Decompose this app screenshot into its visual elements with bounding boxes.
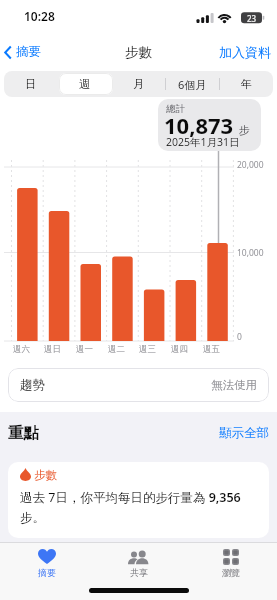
- staticText: 年: [241, 77, 252, 91]
- staticText: 10,000: [237, 247, 264, 259]
- staticText: 0: [237, 331, 242, 343]
- staticText: 10:28: [24, 8, 55, 24]
- button[interactable]: 瀏覽: [185, 543, 277, 578]
- staticText: 週二: [108, 344, 125, 355]
- staticText: 無法使用: [211, 378, 257, 392]
- staticText: 週五: [203, 344, 220, 355]
- staticText: 20,000: [237, 159, 264, 171]
- staticText: 10,873: [164, 110, 234, 140]
- button[interactable]: 摘要: [4, 44, 41, 60]
- staticText: 摘要: [38, 567, 56, 578]
- button[interactable]: 趨勢: [8, 368, 269, 402]
- staticText: 週四: [171, 344, 188, 355]
- button[interactable]: 加入資料: [219, 44, 271, 60]
- staticText: 月: [133, 77, 144, 91]
- staticText: 瀏覽: [222, 567, 240, 578]
- staticText: 週: [79, 77, 90, 91]
- staticText: 週六: [13, 344, 30, 355]
- staticText: 過去 7日，你平均每日的步行量為 9,356: [20, 489, 241, 506]
- staticText: 步。: [20, 510, 45, 526]
- staticText: 步數: [34, 468, 57, 482]
- button[interactable]: 步數: [8, 462, 269, 538]
- staticText: 共享: [130, 567, 148, 578]
- staticText: 趨勢: [20, 377, 211, 393]
- button[interactable]: 週: [57, 71, 111, 97]
- button[interactable]: 摘要: [0, 543, 93, 578]
- staticText: 週日: [44, 344, 61, 355]
- button[interactable]: 顯示全部: [219, 425, 269, 441]
- staticText: 步: [239, 123, 250, 137]
- button[interactable]: 日: [4, 71, 57, 97]
- staticText: 日: [25, 77, 36, 91]
- staticText: 重點: [8, 423, 39, 443]
- staticText: 6個月: [178, 77, 207, 92]
- button[interactable]: 年: [219, 71, 273, 97]
- staticText: 步數: [125, 44, 152, 61]
- staticText: 23: [247, 13, 257, 24]
- button[interactable]: 6個月: [165, 71, 219, 97]
- staticText: 週三: [139, 344, 156, 355]
- button[interactable]: 月: [111, 71, 165, 97]
- staticText: 摘要: [16, 44, 41, 60]
- staticText: 2025年1月31日: [166, 135, 240, 149]
- staticText: 週一: [76, 344, 93, 355]
- button[interactable]: 共享: [93, 543, 185, 578]
- staticText: 總計: [166, 103, 185, 115]
